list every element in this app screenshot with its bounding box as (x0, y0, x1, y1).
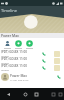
button[interactable]: Call (41, 65, 47, 71)
staticText: (PDT) GD-BX 11:00 (1, 64, 27, 68)
button[interactable]: (PDT) GD-BX 11:00 (0, 50, 64, 57)
button[interactable]: Contacts (3, 38, 11, 50)
staticText: +1 201 555 0123 (10, 78, 29, 81)
staticText: mobile (1, 54, 9, 57)
button[interactable]: Back (5, 91, 11, 97)
staticText: (PDT) GD-BX 11:00 (1, 57, 27, 61)
button[interactable]: Rotate (58, 92, 63, 97)
button[interactable]: Home (22, 91, 28, 97)
button[interactable]: Messages (25, 38, 33, 50)
button[interactable]: Screenshot (51, 92, 56, 97)
button[interactable]: Attachment (54, 51, 60, 57)
button[interactable]: (PDT) GD-BX 11:00 (0, 57, 64, 64)
staticText: mobile (1, 68, 9, 71)
button[interactable]: Call (41, 58, 47, 64)
staticText: Power Max (10, 74, 27, 78)
staticText: mobile (1, 61, 9, 64)
button[interactable]: Recent apps (33, 91, 39, 97)
button[interactable]: Call (41, 51, 47, 57)
button[interactable]: Power Max (0, 71, 64, 83)
button[interactable]: (PDT) GD-BX 11:00 (0, 64, 64, 71)
staticText: Power Max (1, 33, 19, 38)
button[interactable]: WhatsApp (14, 38, 22, 50)
staticText: Timeline (1, 8, 18, 13)
button[interactable]: Timeline (0, 6, 64, 14)
button[interactable]: Call (56, 74, 62, 80)
button[interactable]: Attachment (54, 65, 60, 71)
staticText: (PDT) GD-BX 11:00 (1, 50, 27, 54)
button[interactable]: Attachment (54, 58, 60, 64)
